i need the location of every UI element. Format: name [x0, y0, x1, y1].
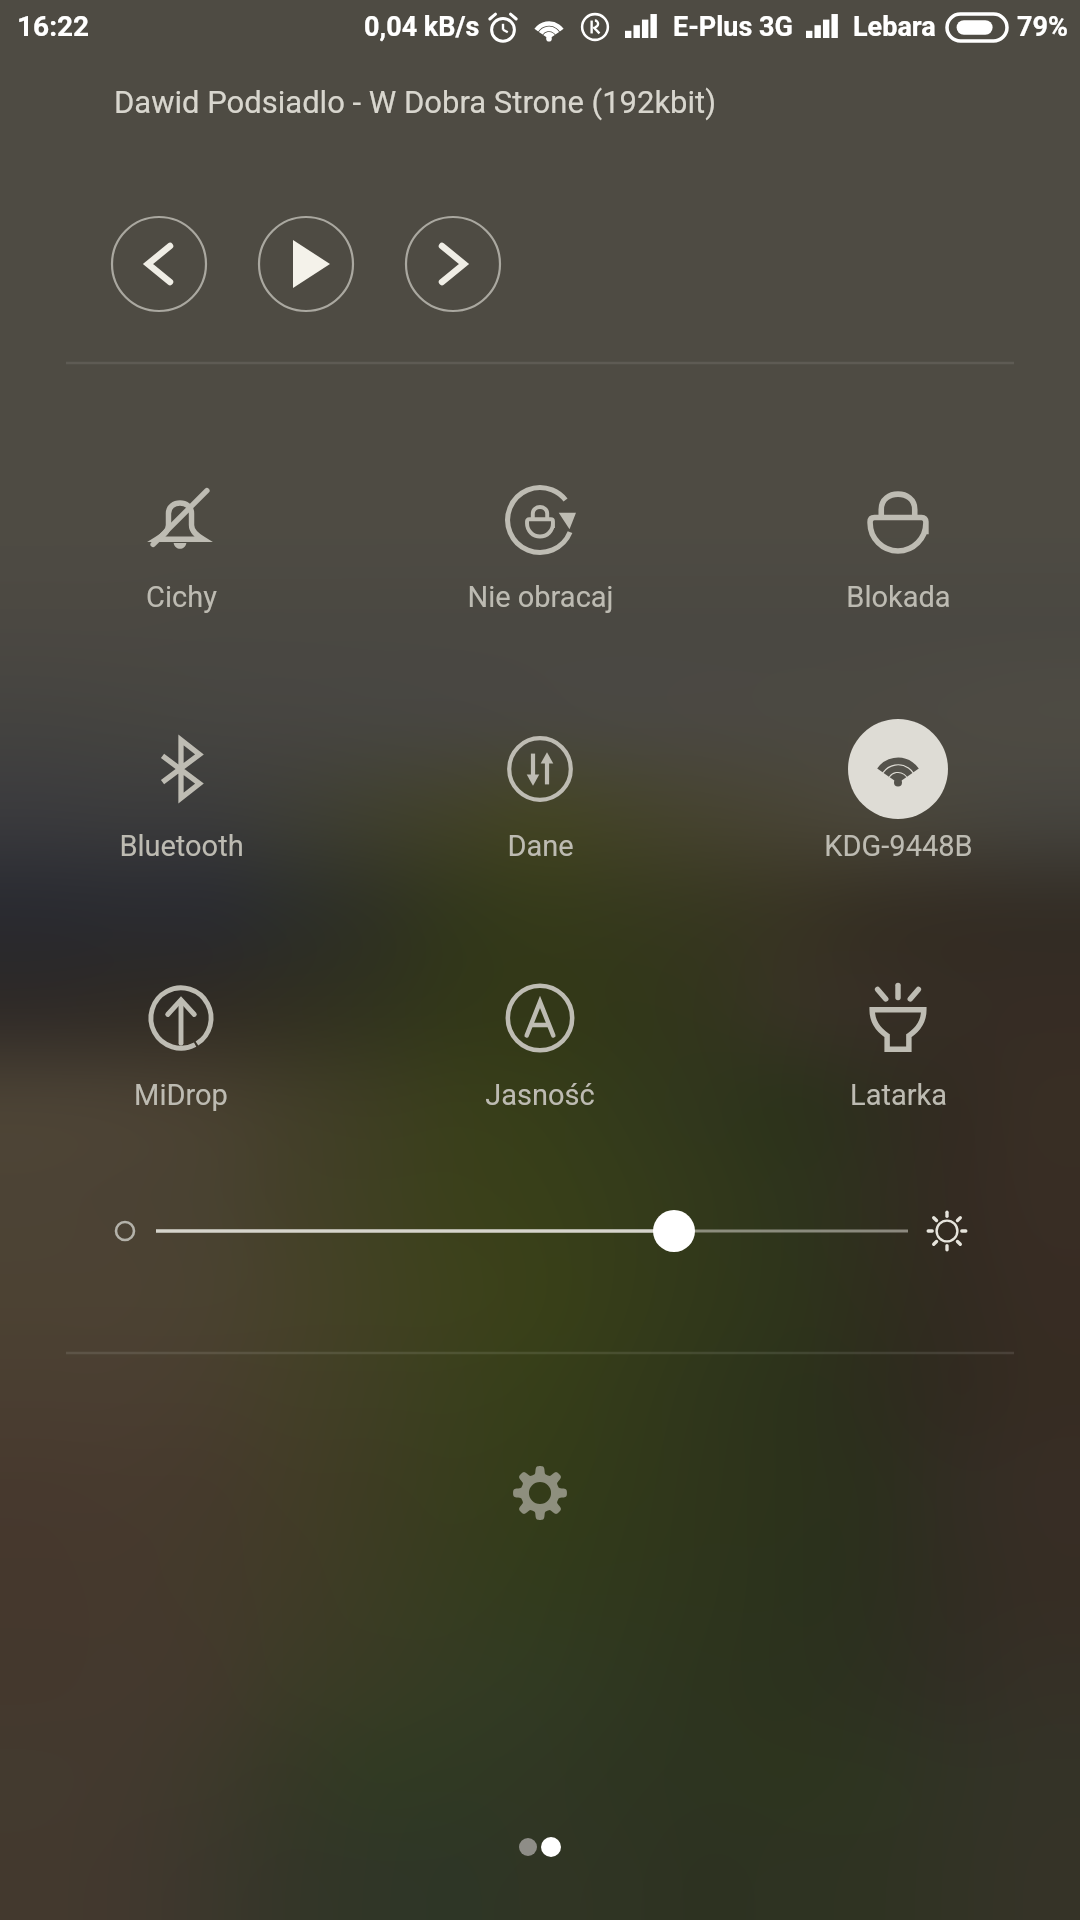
button[interactable]: Next track	[405, 216, 501, 312]
staticText: E-Plus 3G	[673, 11, 793, 43]
button[interactable]: MiDrop	[21, 952, 341, 1138]
button[interactable]: Blokada	[738, 454, 1058, 640]
staticText: Nie obracaj	[467, 580, 614, 614]
button[interactable]: Brightness slider	[100, 1192, 980, 1270]
staticText: Jasność	[485, 1078, 595, 1112]
staticText: Latarka	[850, 1078, 947, 1112]
button[interactable]: Settings	[490, 1443, 590, 1543]
button[interactable]: Jasność	[380, 952, 700, 1138]
staticText: Bluetooth	[119, 829, 244, 863]
button[interactable]: KDG-9448B	[738, 703, 1058, 889]
staticText: Dane	[507, 829, 574, 863]
button[interactable]: Latarka	[738, 952, 1058, 1138]
button[interactable]: Cichy	[21, 454, 341, 640]
staticText: 79%	[1017, 11, 1068, 43]
staticText: Cichy	[146, 580, 217, 614]
button[interactable]: Nie obracaj	[380, 454, 700, 640]
staticText: 16:22	[17, 10, 90, 43]
button[interactable]: Play	[258, 216, 354, 312]
staticText: Blokada	[846, 580, 951, 614]
button[interactable]: Dane	[380, 703, 700, 889]
staticText: Lebara	[853, 11, 936, 43]
staticText: MiDrop	[134, 1078, 228, 1112]
staticText: 0,04 kB/s	[364, 11, 480, 43]
button[interactable]: Bluetooth	[21, 703, 341, 889]
staticText: KDG-9448B	[824, 829, 973, 863]
button[interactable]: Previous track	[111, 216, 207, 312]
staticText: Dawid Podsiadlo - W Dobra Strone (192kbi…	[114, 84, 717, 120]
